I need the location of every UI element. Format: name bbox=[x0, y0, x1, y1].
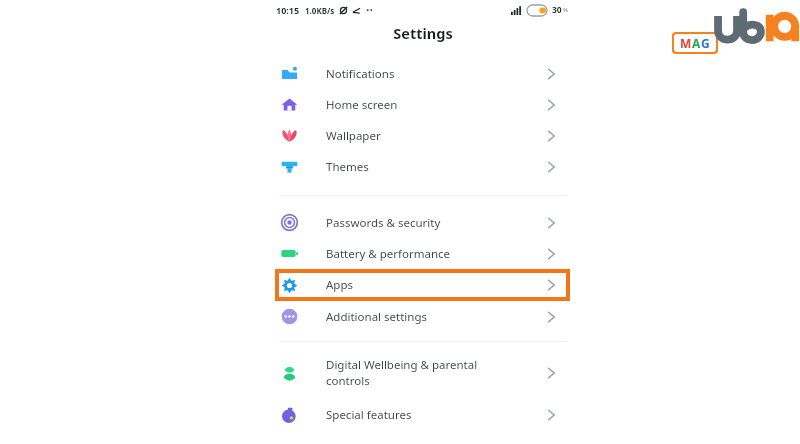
button[interactable]: Wallpaper bbox=[275, 120, 570, 151]
staticText: Apps bbox=[326, 277, 354, 293]
staticText: 1.0KB/s bbox=[305, 5, 335, 16]
button[interactable]: Additional settings bbox=[275, 301, 570, 332]
staticText: Passwords & security bbox=[326, 215, 441, 231]
button[interactable]: Special features bbox=[275, 399, 570, 430]
button[interactable]: Digital Wellbeing & parental bbox=[275, 353, 570, 393]
staticText: Notifications bbox=[326, 66, 395, 82]
staticText: % bbox=[563, 6, 568, 14]
button[interactable]: Apps bbox=[275, 269, 570, 301]
staticText: Settings bbox=[393, 23, 453, 43]
staticText: Special features bbox=[326, 407, 412, 423]
staticText: 30 bbox=[552, 4, 562, 16]
button[interactable]: Home screen bbox=[275, 89, 570, 120]
staticText: controls bbox=[326, 373, 370, 389]
staticText: M bbox=[680, 35, 692, 51]
staticText: Home screen bbox=[326, 97, 398, 113]
staticText: Battery & performance bbox=[326, 246, 451, 262]
staticText: 10:15 bbox=[276, 4, 300, 16]
staticText: Additional settings bbox=[326, 309, 428, 325]
staticText: G bbox=[701, 35, 710, 51]
staticText: Digital Wellbeing & parental bbox=[326, 357, 478, 373]
button[interactable]: Passwords & security bbox=[275, 207, 570, 238]
staticText: A bbox=[692, 35, 701, 51]
button[interactable]: Notifications bbox=[275, 58, 570, 89]
button[interactable]: Battery & performance bbox=[275, 238, 570, 269]
staticText: Wallpaper bbox=[326, 128, 381, 144]
button[interactable]: Themes bbox=[275, 151, 570, 182]
staticText: Themes bbox=[326, 159, 369, 175]
